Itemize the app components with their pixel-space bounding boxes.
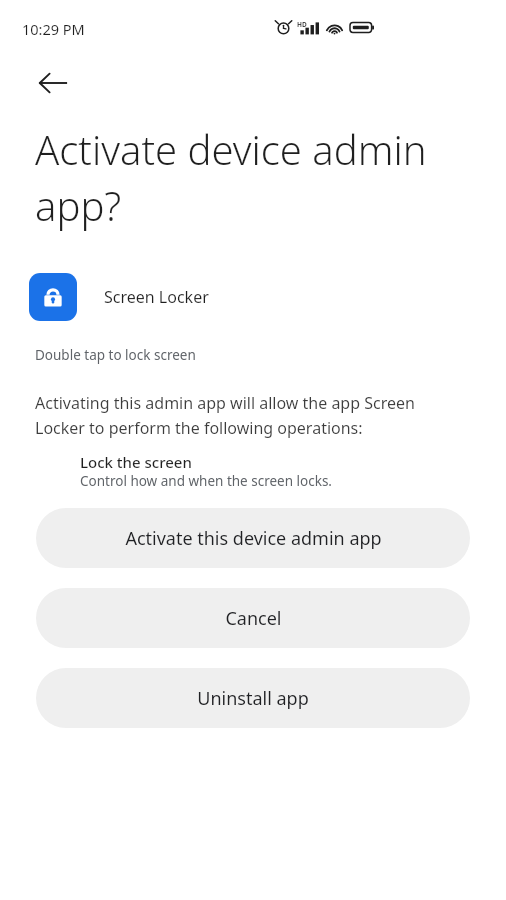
button[interactable]: Cancel bbox=[36, 588, 470, 648]
staticText: Lock the screen bbox=[80, 452, 192, 472]
staticText: Cancel bbox=[225, 606, 282, 631]
staticText: HD bbox=[297, 20, 307, 29]
staticText: Screen Locker bbox=[104, 286, 209, 308]
staticText: Double tap to lock screen bbox=[35, 346, 196, 364]
button[interactable]: Back bbox=[29, 59, 77, 107]
staticText: Activate this device admin app bbox=[125, 526, 382, 551]
button[interactable]: Uninstall app bbox=[36, 668, 470, 728]
staticText: Uninstall app bbox=[197, 686, 309, 711]
staticText: Activating this admin app will allow the… bbox=[35, 392, 455, 438]
staticText: 10:29 PM bbox=[22, 19, 85, 39]
staticText: Activate device admin app? bbox=[35, 122, 427, 233]
button[interactable]: Activate this device admin app bbox=[36, 508, 470, 568]
staticText: Control how and when the screen locks. bbox=[80, 472, 332, 490]
